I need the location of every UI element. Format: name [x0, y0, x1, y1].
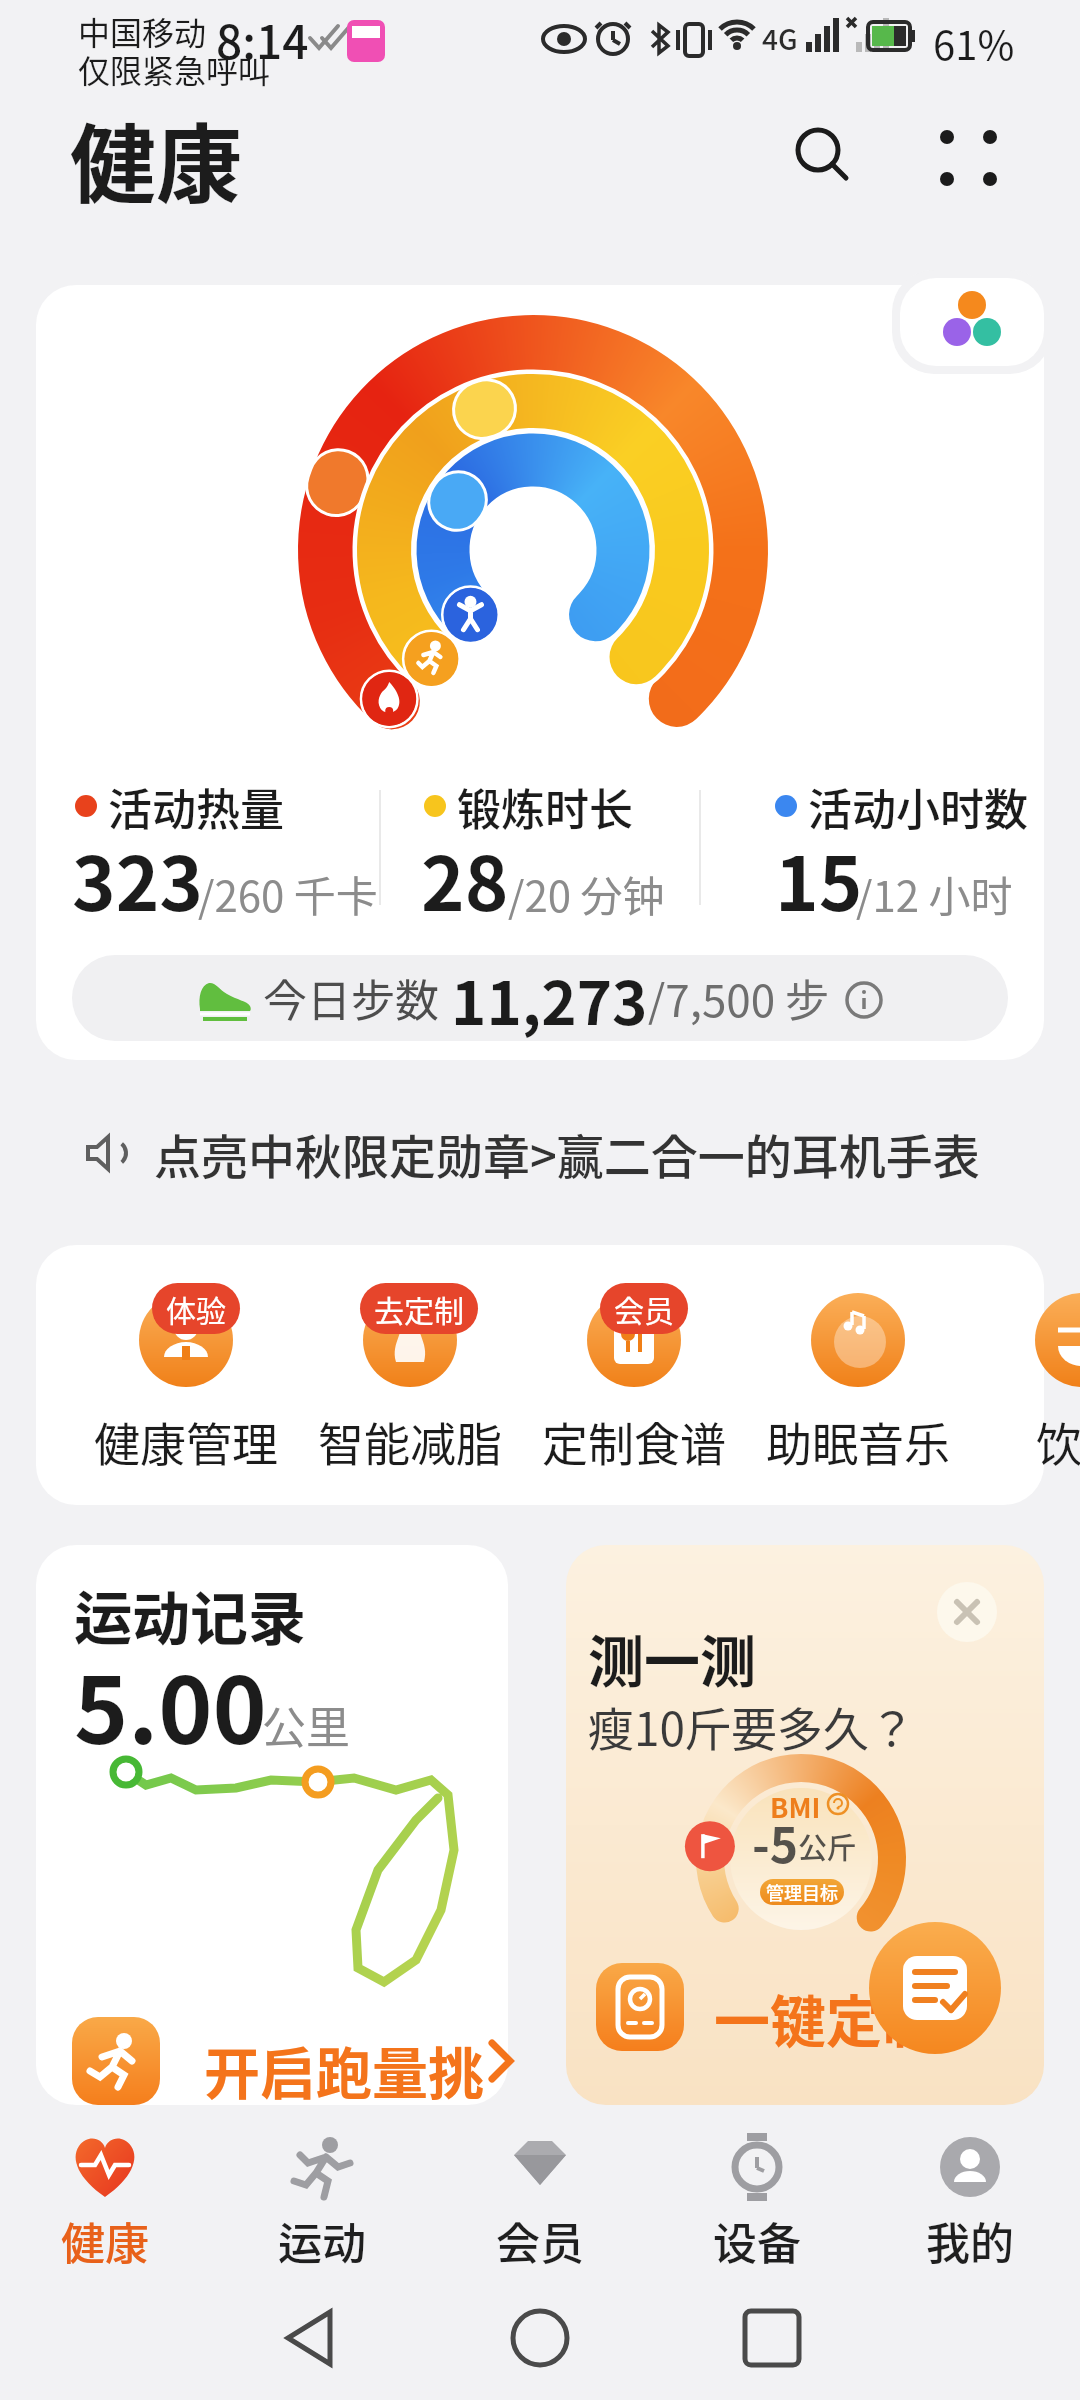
staticText: /260 千卡: [198, 863, 378, 924]
button[interactable]: 健康: [25, 2125, 185, 2275]
staticText: 智能减脂: [318, 1408, 502, 1475]
staticText: 活动小时数: [808, 775, 1028, 839]
button[interactable]: 会员: [460, 2125, 620, 2275]
staticText: /7,500 步: [648, 966, 830, 1030]
staticText: 健康: [61, 2209, 149, 2273]
button[interactable]: [768, 1275, 948, 1495]
staticText: 会员: [496, 2209, 584, 2273]
staticText: 开启跑量挑: [204, 2029, 484, 2110]
staticText: 今日步数: [263, 966, 439, 1030]
staticText: 会员: [614, 1287, 674, 1330]
staticText: 我的: [926, 2209, 1014, 2273]
button[interactable]: 运动: [242, 2125, 402, 2275]
staticText: 设备: [713, 2209, 801, 2273]
button[interactable]: 开启跑量挑: [72, 2017, 492, 2105]
button[interactable]: 点亮中秋限定勋章>赢二合一的耳机手表: [80, 1118, 1030, 1188]
staticText: 4G: [762, 18, 798, 59]
staticText: 公斤: [798, 1825, 857, 1867]
staticText: 中国移动: [78, 8, 207, 54]
button[interactable]: 测一测: [566, 1545, 1044, 2105]
staticText: 健康: [70, 96, 242, 221]
staticText: 28: [421, 825, 509, 932]
staticText: 健康管理: [94, 1408, 278, 1475]
button[interactable]: 活动热量: [36, 285, 1044, 1060]
staticText: 61%: [933, 14, 1015, 72]
staticText: 定制食谱: [542, 1408, 726, 1475]
button[interactable]: [992, 1275, 1080, 1495]
button[interactable]: 我的: [890, 2125, 1050, 2275]
staticText: 8:14: [216, 6, 309, 73]
staticText: 体验: [166, 1287, 226, 1330]
button[interactable]: [475, 2290, 605, 2400]
staticText: 测一测: [588, 1617, 756, 1698]
button[interactable]: [780, 112, 866, 198]
staticText: 点亮中秋限定勋章>赢二合一的耳机手表: [154, 1119, 980, 1187]
staticText: 一键定制: [714, 1977, 938, 2058]
staticText: /12 小时: [856, 863, 1013, 924]
staticText: -5: [752, 1807, 799, 1877]
staticText: 5.00: [74, 1637, 267, 1770]
staticText: 323: [72, 825, 203, 932]
button[interactable]: [900, 278, 1044, 366]
staticText: 15: [775, 825, 863, 932]
staticText: 锻炼时长: [457, 775, 633, 839]
staticText: 运动: [278, 2209, 366, 2273]
button[interactable]: [707, 2290, 837, 2400]
button[interactable]: [937, 1582, 997, 1642]
staticText: 活动热量: [108, 775, 284, 839]
button[interactable]: [240, 2290, 370, 2400]
staticText: 饮食: [1036, 1408, 1080, 1475]
button[interactable]: [925, 112, 1015, 202]
button[interactable]: [320, 1275, 500, 1495]
staticText: 去定制: [374, 1287, 464, 1330]
staticText: 瘦10斤要多久？: [588, 1693, 916, 1760]
staticText: 助眠音乐: [766, 1408, 950, 1475]
button[interactable]: [96, 1275, 276, 1495]
button[interactable]: 今日步数: [72, 955, 1008, 1041]
staticText: 管理目标: [766, 1879, 838, 1905]
staticText: BMI: [770, 1787, 821, 1826]
staticText: 仅限紧急呼叫: [78, 46, 271, 92]
staticText: /20 分钟: [508, 863, 665, 924]
button[interactable]: [869, 1922, 1001, 2054]
button[interactable]: 设备: [677, 2125, 837, 2275]
staticText: 运动记录: [74, 1573, 307, 1657]
staticText: 公里: [262, 1693, 350, 1757]
button[interactable]: [544, 1275, 724, 1495]
button[interactable]: 运动记录: [36, 1545, 508, 2105]
staticText: 11,273: [451, 955, 648, 1041]
